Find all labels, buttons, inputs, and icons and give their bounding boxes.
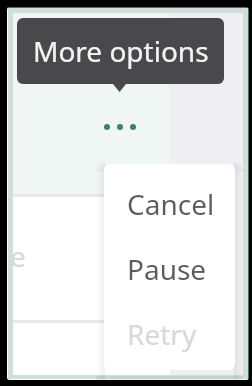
button[interactable]: Cancel [104,171,235,236]
staticText: e [10,237,26,275]
staticText: Retry [127,315,197,353]
button[interactable]: Pause [104,236,235,301]
staticText: Pause [127,250,207,288]
staticText: More options [33,32,209,70]
staticText: Cancel [127,185,215,223]
button[interactable]: More options [97,104,143,150]
button[interactable]: Retry [104,301,235,366]
